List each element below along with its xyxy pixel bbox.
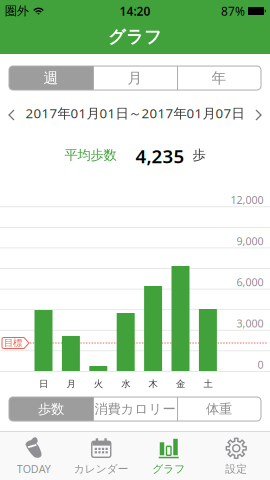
button[interactable]: 次の週 [255,101,270,128]
button[interactable]: 前の週 [0,101,15,128]
staticText: 9,000 [236,234,263,248]
staticText: グラフ [108,26,162,48]
staticText: 14:20 [119,3,150,19]
staticText: 0 [257,357,263,372]
button[interactable]: 歩数 [9,397,93,421]
staticText: 6,000 [236,275,263,289]
staticText: 圏外 [5,4,29,18]
button[interactable]: 設定 [202,432,270,480]
button[interactable]: 年 [177,66,261,90]
staticText: 3,000 [236,316,263,330]
button[interactable]: グラフ [135,432,202,480]
staticText: 年 [211,69,226,87]
button[interactable]: 体重 [177,397,261,421]
staticText: 目標 [4,337,22,349]
staticText: 月 [127,69,142,87]
button[interactable]: カレンダー [67,432,135,480]
staticText: 12,000 [230,193,263,207]
staticText: 火 [94,378,103,390]
staticText: 土 [203,378,212,390]
staticText: 歩 [192,147,205,163]
staticText: 4,235 [135,144,184,168]
staticText: 月 [66,378,75,390]
button[interactable]: 月 [93,66,177,90]
staticText: 体重 [206,401,232,417]
staticText: 設定 [225,462,247,475]
staticText: 消費カロリー [94,401,175,417]
staticText: 金 [176,378,185,390]
staticText: 平均歩数 [64,147,116,163]
staticText: 日 [39,378,48,390]
staticText: 水 [121,378,130,390]
staticText: 2017年01月01日～2017年01月07日 [25,104,244,122]
button[interactable]: TODAY [0,432,67,480]
button[interactable]: 週 [9,66,93,90]
staticText: 木 [149,378,158,390]
staticText: カレンダー [74,462,129,475]
staticText: 週 [43,69,58,87]
staticText: TODAY [17,462,51,476]
staticText: グラフ [152,462,185,475]
staticText: 歩数 [38,401,64,417]
button[interactable]: 消費カロリー [93,397,177,421]
staticText: 87% [221,3,245,19]
